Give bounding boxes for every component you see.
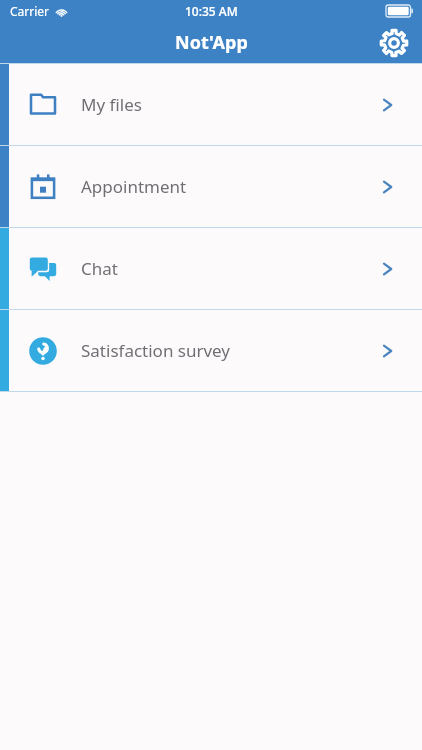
staticText: 10:35 AM bbox=[185, 3, 238, 19]
button[interactable]: Chat bbox=[0, 228, 422, 309]
staticText: Appointment bbox=[81, 175, 187, 198]
button[interactable]: Settings bbox=[374, 23, 414, 63]
staticText: Not'App bbox=[175, 30, 248, 55]
button[interactable]: Appointment bbox=[0, 146, 422, 227]
staticText: Satisfaction survey bbox=[81, 339, 231, 362]
staticText: My files bbox=[81, 93, 142, 116]
staticText: Carrier bbox=[10, 3, 50, 19]
staticText: Chat bbox=[81, 257, 118, 280]
button[interactable]: Satisfaction survey bbox=[0, 310, 422, 391]
button[interactable]: My files bbox=[0, 64, 422, 145]
